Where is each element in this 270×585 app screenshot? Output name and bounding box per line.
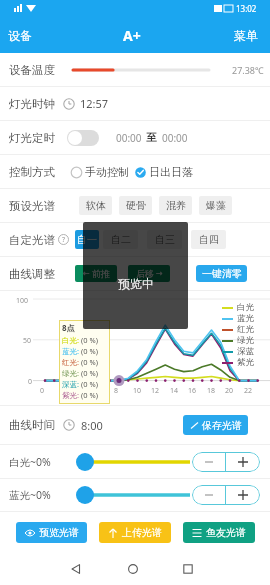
button[interactable]: 手动控制 <box>70 165 129 179</box>
staticText: A+ <box>123 26 141 45</box>
staticText: 曲线调整 <box>9 267 55 281</box>
staticText: 红光 <box>237 324 254 335</box>
button[interactable]: 鱼友光谱 <box>183 522 255 543</box>
staticText: 预览光谱 <box>39 526 79 539</box>
staticText: 蓝光~0% <box>9 488 51 502</box>
button[interactable]: 保存光谱 <box>183 415 248 435</box>
staticText: 软体 <box>86 199 106 212</box>
staticText: (0 %) <box>81 335 98 345</box>
button[interactable]: 设备 <box>8 28 32 43</box>
staticText: 红光: <box>62 357 80 367</box>
staticText: 设备温度 <box>9 63 55 77</box>
staticText: 自二 <box>111 233 131 246</box>
staticText: 16 <box>188 386 197 396</box>
staticText: 自一 <box>77 233 97 246</box>
staticText: (0 %) <box>81 390 98 400</box>
button[interactable]: ← <box>75 265 117 282</box>
staticText: 12 <box>151 386 160 396</box>
staticText: 紫光: <box>62 390 80 400</box>
staticText: 2 <box>59 386 64 396</box>
staticText: 控制方式 <box>9 165 55 179</box>
staticText: 曲线时间 <box>9 418 55 432</box>
staticText: 灯光定时 <box>9 131 55 145</box>
staticText: 深蓝: <box>62 379 80 389</box>
staticText: 预设光谱 <box>9 199 55 213</box>
button[interactable] <box>192 452 225 472</box>
staticText: 保存光谱 <box>202 419 242 432</box>
button[interactable]: Recents <box>177 558 199 580</box>
button[interactable]: 爆藻 <box>199 196 232 215</box>
staticText: 深蓝 <box>237 346 254 357</box>
staticText: 鱼友光谱 <box>206 526 246 539</box>
staticText: 4 <box>77 386 82 396</box>
staticText: ? <box>62 235 66 245</box>
button[interactable] <box>226 485 260 505</box>
staticText: 6 <box>96 386 101 396</box>
button[interactable]: 软体 <box>79 196 112 215</box>
staticText: 18 <box>207 386 216 396</box>
staticText: 自四 <box>199 233 219 246</box>
button[interactable]: 自四 <box>191 230 226 249</box>
staticText: 100 <box>16 296 29 306</box>
button[interactable] <box>226 452 260 472</box>
staticText: 00:00 <box>162 131 188 145</box>
button[interactable]: 后移 <box>128 265 170 282</box>
staticText: 上传光谱 <box>122 526 162 539</box>
staticText: 13:02 <box>236 3 257 14</box>
staticText: 后移 <box>136 268 154 279</box>
staticText: 20 <box>225 386 234 396</box>
staticText: ← <box>83 269 90 278</box>
staticText: 前推 <box>92 268 110 279</box>
button[interactable]: 自二 <box>103 230 138 249</box>
staticText: 0 <box>28 377 33 387</box>
staticText: 灯光时钟 <box>9 97 55 111</box>
button[interactable]: 菜单 <box>234 28 258 43</box>
staticText: 27.38℃ <box>232 64 264 76</box>
staticText: 8 <box>114 386 119 396</box>
staticText: (0 %) <box>81 379 98 389</box>
staticText: 自定光谱 <box>9 233 55 247</box>
staticText: 至 <box>146 131 157 144</box>
staticText: 紫光 <box>237 357 254 368</box>
staticText: 白光~0% <box>9 455 51 469</box>
button[interactable]: 自一 <box>75 230 99 249</box>
button[interactable]: 一键清零 <box>196 265 247 282</box>
staticText: (0 %) <box>81 368 98 378</box>
staticText: → <box>156 269 163 278</box>
button[interactable]: 上传光谱 <box>99 522 171 543</box>
staticText: 10 <box>133 386 142 396</box>
staticText: 蓝光 <box>237 313 254 324</box>
staticText: 日出日落 <box>149 165 193 179</box>
staticText: 手动控制 <box>85 165 129 179</box>
staticText: 50 <box>23 336 32 346</box>
button[interactable] <box>67 130 99 146</box>
staticText: 菜单 <box>234 28 258 43</box>
staticText: 00:00 <box>116 131 142 145</box>
staticText: 白光: <box>62 335 80 345</box>
staticText: 22 <box>244 386 253 396</box>
other: Help <box>58 234 69 245</box>
staticText: 预览中 <box>118 276 154 291</box>
button[interactable]: Back <box>65 558 87 580</box>
button[interactable]: 混养 <box>159 196 192 215</box>
staticText: 自三 <box>155 233 175 246</box>
staticText: 一键清零 <box>202 267 242 280</box>
button[interactable]: 预览光谱 <box>16 522 87 543</box>
staticText: 0 <box>40 386 45 396</box>
staticText: (0 %) <box>81 357 98 367</box>
staticText: 混养 <box>166 199 186 212</box>
staticText: 蓝光: <box>62 346 80 356</box>
button[interactable]: Home <box>122 558 144 580</box>
staticText: 硬骨 <box>126 199 146 212</box>
staticText: 白光 <box>237 302 254 313</box>
staticText: 爆藻 <box>206 199 226 212</box>
staticText: 绿光: <box>62 368 80 378</box>
button[interactable] <box>192 485 225 505</box>
staticText: 12:57 <box>80 96 109 111</box>
button[interactable]: 日出日落 <box>134 165 193 179</box>
staticText: 14 <box>170 386 179 396</box>
button[interactable]: 硬骨 <box>119 196 152 215</box>
button[interactable]: 自三 <box>147 230 182 249</box>
staticText: 8:00 <box>81 418 103 433</box>
staticText: 8点 <box>62 322 75 333</box>
